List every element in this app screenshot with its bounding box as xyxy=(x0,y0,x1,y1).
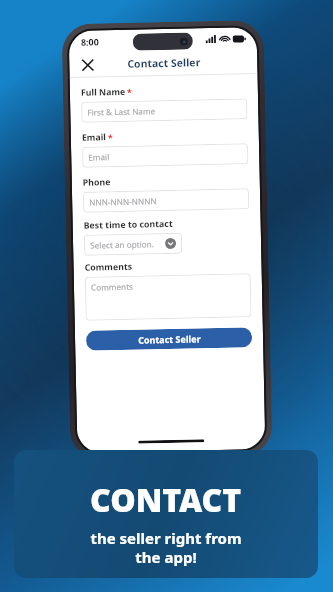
staticText: Comments xyxy=(84,261,133,274)
button[interactable]: Select an option. xyxy=(84,233,182,256)
button[interactable]: First & Last Name xyxy=(81,98,247,123)
staticText: Contact Seller xyxy=(127,55,200,71)
staticText: Contact Seller xyxy=(138,332,201,346)
staticText: * xyxy=(127,86,132,98)
button[interactable]: Email xyxy=(82,143,248,168)
staticText: NNN-NNN-NNNN xyxy=(89,195,157,208)
staticText: First & Last Name xyxy=(87,105,155,118)
staticText: Select an option. xyxy=(90,238,154,251)
staticText: Best time to contact xyxy=(84,218,173,232)
staticText: Email xyxy=(82,131,107,144)
staticText: Email xyxy=(88,151,110,163)
staticText: Full Name xyxy=(81,86,126,99)
button[interactable]: NNN-NNN-NNNN xyxy=(83,188,249,213)
staticText: 8:00 xyxy=(81,35,99,48)
staticText: the seller right from the app! xyxy=(90,528,242,567)
button[interactable]: Contact Seller xyxy=(86,327,252,351)
button[interactable]: Comments xyxy=(85,273,252,321)
staticText: * xyxy=(108,131,113,143)
button[interactable]: Close xyxy=(76,53,99,76)
staticText: CONTACT xyxy=(90,478,242,522)
staticText: Phone xyxy=(83,176,111,189)
staticText: Comments xyxy=(91,281,133,293)
